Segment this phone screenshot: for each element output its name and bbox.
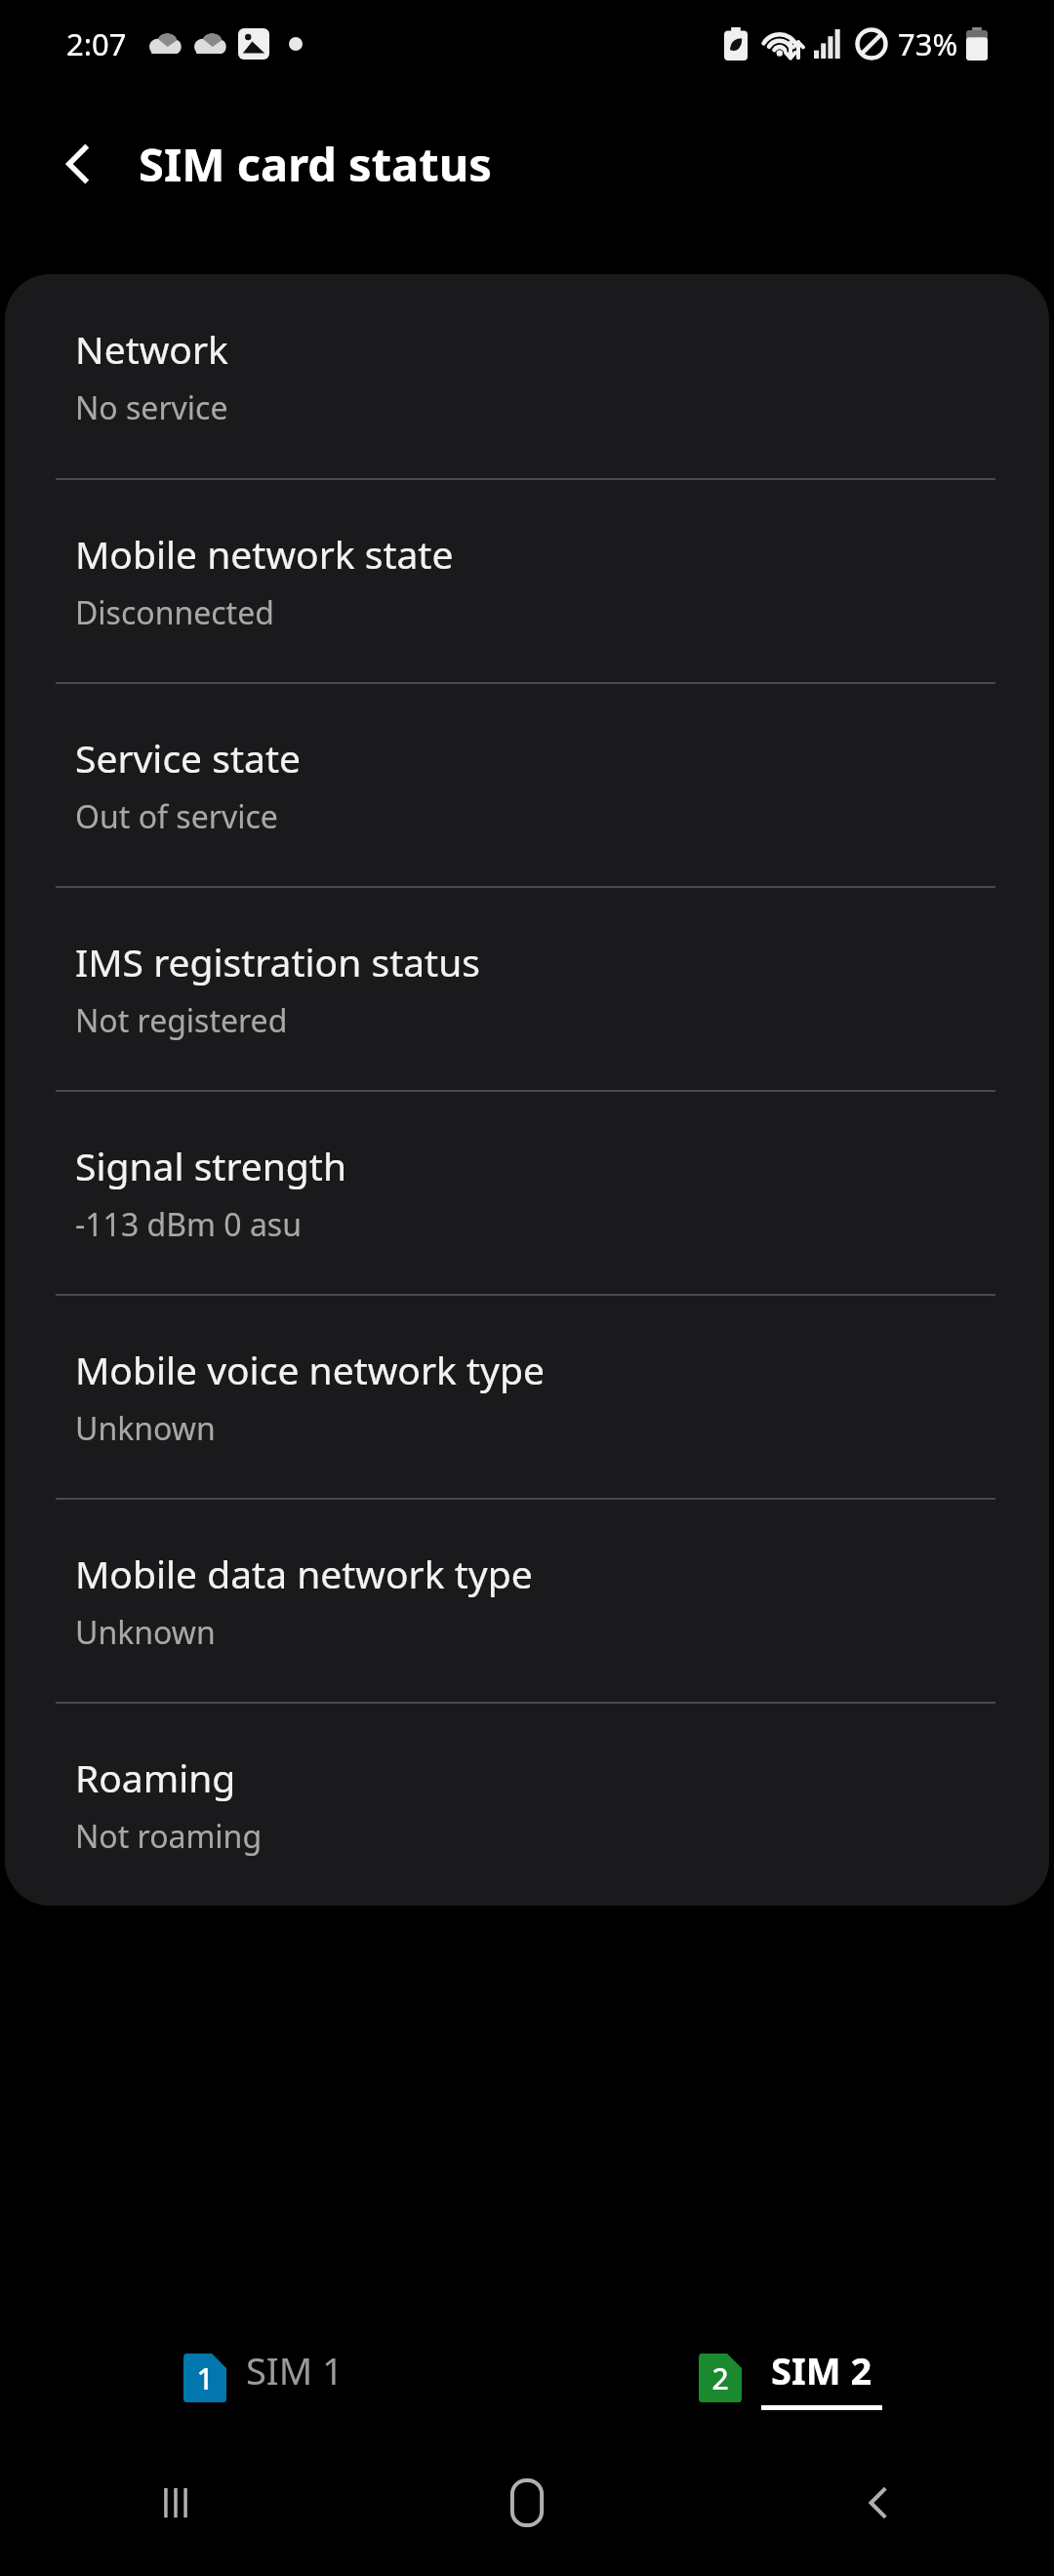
staticText: Service state <box>75 732 301 784</box>
staticText: Unknown <box>75 1407 216 1450</box>
staticText: Not roaming <box>75 1815 263 1858</box>
staticText: Out of service <box>75 795 278 838</box>
button[interactable]: Signal strength <box>5 1090 1049 1294</box>
staticText: SIM 1 <box>246 2345 344 2395</box>
button[interactable]: Network <box>5 274 1049 478</box>
staticText: IMS registration status <box>75 936 480 987</box>
button[interactable]: IMS registration status <box>5 886 1049 1090</box>
staticText: SIM 2 <box>771 2345 872 2395</box>
staticText: Signal strength <box>75 1140 346 1191</box>
staticText: Network <box>75 323 228 375</box>
button[interactable]: Back <box>703 2430 1054 2576</box>
staticText: 2 <box>711 2358 729 2398</box>
staticText: Not registered <box>75 999 288 1042</box>
staticText: Unknown <box>75 1611 216 1654</box>
button[interactable]: Back <box>39 125 117 203</box>
staticText: 2:07 <box>66 23 127 64</box>
button[interactable]: Roaming <box>5 1702 1049 1906</box>
staticText: Disconnected <box>75 591 274 634</box>
staticText: Roaming <box>75 1751 236 1803</box>
button[interactable]: Mobile data network type <box>5 1498 1049 1702</box>
staticText: SIM card status <box>139 133 492 195</box>
button[interactable]: 1 <box>168 2335 359 2420</box>
button[interactable]: Mobile network state <box>5 478 1049 682</box>
staticText: 1 <box>196 2358 214 2398</box>
button[interactable]: Recents <box>0 2430 351 2576</box>
staticText: Mobile data network type <box>75 1548 533 1599</box>
staticText: 73% <box>898 23 958 64</box>
button[interactable]: Home <box>351 2430 703 2576</box>
button[interactable]: 2 <box>683 2335 898 2420</box>
button[interactable]: Mobile voice network type <box>5 1294 1049 1498</box>
staticText: No service <box>75 386 228 429</box>
staticText: -113 dBm 0 asu <box>75 1203 302 1246</box>
button[interactable]: Service state <box>5 682 1049 886</box>
staticText: Mobile voice network type <box>75 1344 545 1395</box>
staticText: Mobile network state <box>75 528 454 580</box>
